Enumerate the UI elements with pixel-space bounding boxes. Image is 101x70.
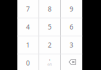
button[interactable]: 7 <box>17 0 39 18</box>
staticText: 2 <box>48 41 52 49</box>
staticText: a/s <box>47 61 52 67</box>
button[interactable]: 6 <box>61 18 82 36</box>
staticText: 8 <box>48 5 52 13</box>
staticText: 9 <box>69 5 73 13</box>
button[interactable]: 4 <box>17 18 39 36</box>
button[interactable]: . <box>39 54 60 70</box>
staticText: . <box>49 54 51 62</box>
button[interactable]: 1 <box>17 36 39 54</box>
staticText: 6 <box>69 23 73 31</box>
staticText: 0 <box>26 59 30 67</box>
button[interactable]: 0 <box>17 54 39 70</box>
button[interactable]: 8 <box>39 0 60 18</box>
staticText: 3 <box>69 41 73 49</box>
button[interactable]: 2 <box>39 36 60 54</box>
staticText: 4 <box>26 23 30 31</box>
staticText: 1 <box>26 41 30 49</box>
button[interactable]: 5 <box>39 18 60 36</box>
button[interactable]: 9 <box>61 0 82 18</box>
staticText: 7 <box>26 5 30 13</box>
button[interactable]: Delete <box>61 54 82 70</box>
button[interactable]: 3 <box>61 36 82 54</box>
staticText: 5 <box>48 23 52 31</box>
